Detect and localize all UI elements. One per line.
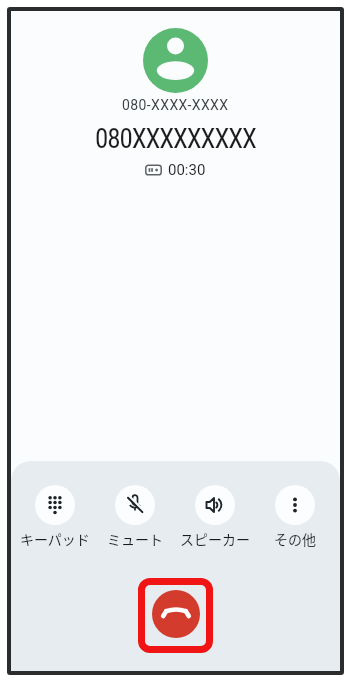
staticText: 00:30 bbox=[168, 161, 206, 179]
button[interactable]: キーパッド bbox=[15, 485, 95, 549]
button[interactable]: スピーカー bbox=[175, 485, 255, 549]
staticText: 080-XXXX-XXXX bbox=[122, 97, 229, 113]
staticText: その他 bbox=[274, 529, 316, 549]
staticText: スピーカー bbox=[180, 529, 250, 549]
staticText: ミュート bbox=[107, 529, 163, 549]
button[interactable]: ミュート bbox=[95, 485, 175, 549]
staticText: 080XXXXXXXXX bbox=[95, 123, 256, 155]
button[interactable] bbox=[152, 590, 200, 638]
staticText: キーパッド bbox=[20, 529, 90, 549]
button[interactable]: その他 bbox=[255, 485, 335, 549]
